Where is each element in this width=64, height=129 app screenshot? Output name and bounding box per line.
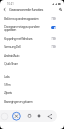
button[interactable]: Share [46, 112, 54, 120]
button[interactable]: Crop [0, 112, 9, 121]
button[interactable]: Bewegingen en gebaren [0, 97, 64, 105]
button[interactable]: Off [51, 37, 56, 40]
staticText: Quick Share [4, 61, 56, 66]
button[interactable]: Text [26, 112, 33, 119]
staticText: Doorgaan met apps op andere apparaten [4, 24, 50, 32]
button[interactable]: Off [51, 45, 56, 48]
button[interactable]: Samsung DeX [0, 42, 64, 51]
button[interactable]: Bel-/sms op andere apparaten [0, 14, 64, 23]
staticText: Koppeling met Windows [4, 36, 50, 41]
staticText: Labs [4, 74, 56, 79]
button[interactable]: Koppeling met Windows [0, 34, 64, 43]
staticText: Samsung DeX [4, 44, 50, 49]
button[interactable]: Android Auto [0, 51, 64, 59]
button[interactable]: Draw [11, 111, 22, 122]
button[interactable]: Doorgaan met apps op andere apparaten [0, 22, 64, 33]
button[interactable]: Sticker [35, 112, 43, 120]
button[interactable]: Labs [0, 72, 64, 80]
staticText: Bel-/sms op andere apparaten [4, 16, 50, 21]
button[interactable]: Quick Share [0, 59, 64, 68]
staticText: Bewegingen en gebaren [4, 99, 56, 104]
button[interactable]: Back [0, 6, 9, 13]
staticText: 10:21 [7, 2, 14, 6]
staticText: S Pen [4, 82, 56, 87]
button[interactable]: S Pen [0, 80, 64, 88]
button[interactable]: Zijtoets [0, 88, 64, 96]
staticText: Android Auto [4, 53, 56, 58]
staticText: Zijtoets [4, 90, 56, 95]
button[interactable]: On [51, 26, 56, 29]
button[interactable]: Search [56, 6, 64, 13]
staticText: Geavanceerde functies [9, 7, 44, 12]
button[interactable]: Off [51, 17, 56, 20]
